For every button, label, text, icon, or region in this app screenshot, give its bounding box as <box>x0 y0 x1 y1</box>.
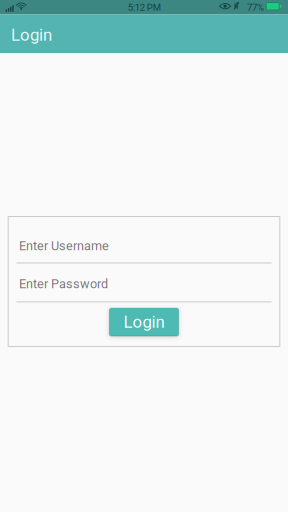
staticText: Enter Username <box>19 238 109 253</box>
button[interactable]: Login <box>109 308 179 336</box>
staticText: 5:12 PM <box>128 2 161 13</box>
staticText: 77% <box>247 2 264 13</box>
staticText: Login <box>11 25 52 45</box>
staticText: Enter Password <box>19 276 108 291</box>
staticText: Login <box>123 312 164 332</box>
